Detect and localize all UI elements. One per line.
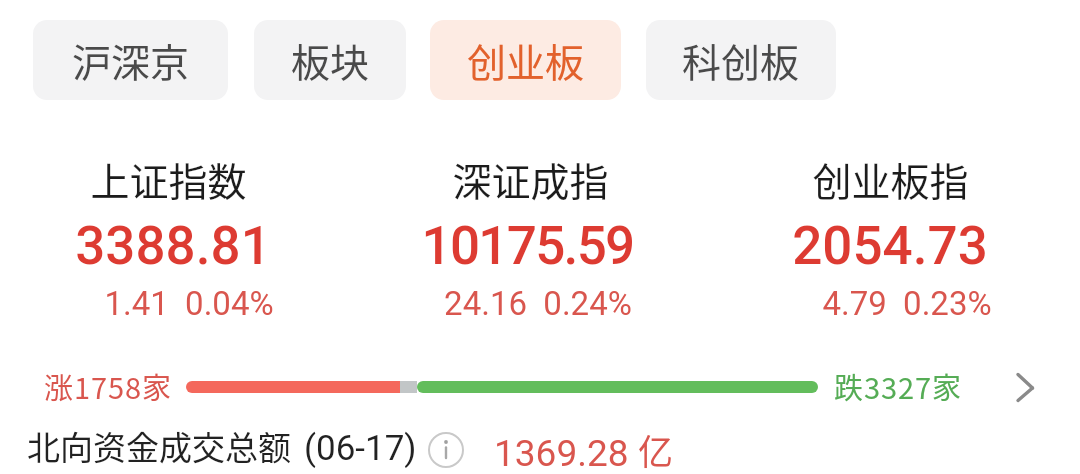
staticText: 24.16 0.24% xyxy=(444,284,632,323)
staticText: 北向资金成交总额 xyxy=(27,422,291,470)
button[interactable]: 板块 xyxy=(254,20,406,100)
staticText: 涨1758家 xyxy=(44,365,172,407)
button[interactable]: 涨1758家 xyxy=(0,358,1080,418)
staticText: 创业板 xyxy=(467,32,585,88)
other: More details xyxy=(1008,366,1052,410)
button[interactable]: 深证成指 xyxy=(352,150,708,330)
staticText: 板块 xyxy=(291,32,370,88)
staticText: 1.41 0.04% xyxy=(104,284,274,323)
staticText: 科创板 xyxy=(682,32,800,88)
staticText: 3388.81 xyxy=(75,215,271,277)
staticText: 沪深京 xyxy=(72,32,190,88)
staticText: 深证成指 xyxy=(452,151,609,207)
staticText: 上证指数 xyxy=(90,151,247,207)
staticText: 4.79 0.23% xyxy=(822,284,992,323)
staticText: 1369.28 xyxy=(494,432,629,474)
staticText: 跌3327家 xyxy=(834,365,962,407)
button[interactable]: 创业板指 xyxy=(712,150,1068,330)
staticText: 亿 xyxy=(638,424,674,474)
staticText: 2054.73 xyxy=(792,215,988,277)
staticText: 创业板指 xyxy=(812,151,969,207)
button[interactable]: 北向资金成交总额 xyxy=(0,420,1080,474)
staticText: 10175.59 xyxy=(421,215,634,277)
button[interactable]: 沪深京 xyxy=(33,20,228,100)
other: Info xyxy=(428,432,464,468)
button[interactable]: 上证指数 xyxy=(0,150,346,330)
button[interactable]: 科创板 xyxy=(646,20,836,100)
button[interactable]: 创业板 xyxy=(430,20,621,100)
staticText: (06-17) xyxy=(304,428,417,469)
